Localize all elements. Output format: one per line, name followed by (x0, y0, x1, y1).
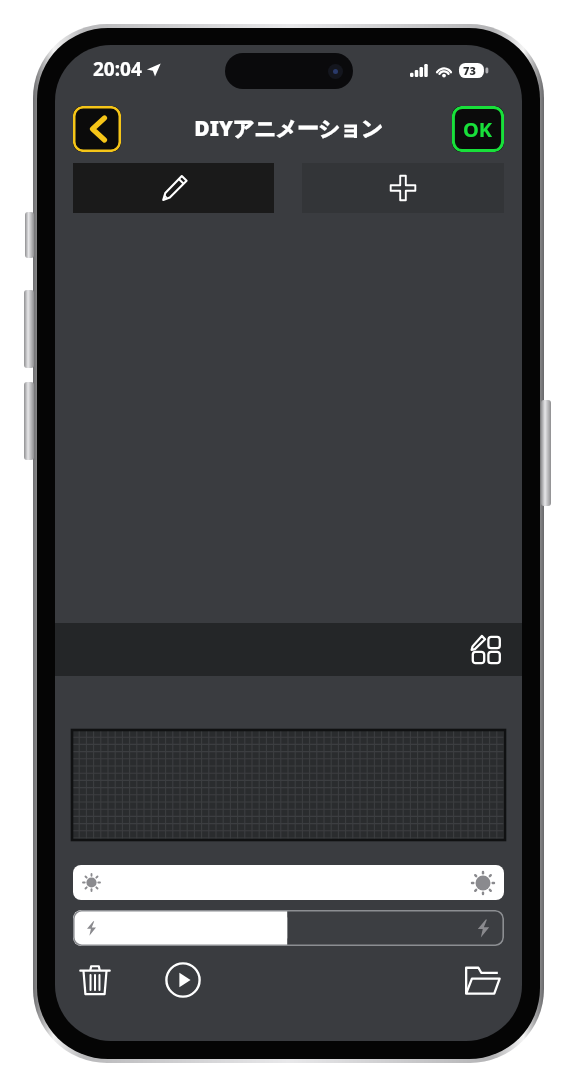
button[interactable]: Brightness (73, 865, 504, 900)
staticText: 73 (463, 63, 476, 78)
button[interactable]: Draw (73, 163, 274, 213)
button[interactable]: Back (73, 106, 121, 152)
staticText: OK (463, 116, 493, 143)
button[interactable]: Add frame (302, 163, 504, 213)
staticText: 20:04 (93, 56, 142, 82)
button[interactable]: OK (452, 106, 504, 152)
button[interactable]: Open folder (456, 954, 508, 1006)
button[interactable]: Speed (73, 910, 504, 946)
button[interactable]: Delete (69, 954, 121, 1006)
button[interactable]: Edit tiles (464, 628, 508, 672)
button[interactable]: Frames (72, 730, 505, 840)
button[interactable]: Play (157, 954, 209, 1006)
staticText: DIYアニメーション (194, 114, 383, 143)
